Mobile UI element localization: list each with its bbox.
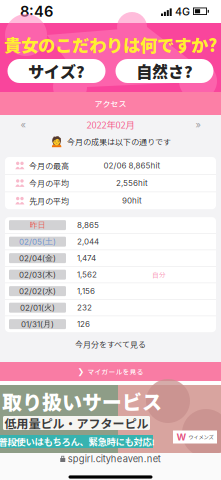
button[interactable]: 取り扱いサービス (0, 385, 221, 453)
staticText: » (195, 119, 200, 130)
staticText: 2,556hit (116, 178, 148, 188)
staticText: 今月の平均 (29, 177, 69, 189)
staticText: 8,865 (77, 220, 99, 230)
staticText: 02/03(木) (19, 270, 56, 280)
staticText: 2022年02月 (86, 118, 134, 131)
staticText: « (20, 119, 25, 130)
staticText: 普段使いはもちろん、緊急時にも対応! (0, 435, 154, 448)
staticText: 2,044 (77, 237, 99, 246)
staticText: 今月の最高 (29, 160, 69, 171)
staticText: 02/01(火) (20, 303, 55, 313)
staticText: 232 (77, 303, 92, 312)
staticText: 02/06 8,865hit (103, 161, 160, 170)
button[interactable]: 今月分をすべて見る (0, 332, 221, 356)
staticText: 🙍 (50, 135, 63, 148)
staticText: 4G (175, 5, 190, 18)
button[interactable]: 前の月 (0, 115, 46, 134)
staticText: アクセス (94, 98, 126, 109)
button[interactable]: ❯ (0, 362, 221, 381)
staticText: 02/05(土) (19, 237, 56, 247)
staticText: ウィメンズ (188, 433, 213, 441)
staticText: spgirl.cityheaven.net (68, 453, 161, 465)
button[interactable]: 次の月 (175, 115, 221, 134)
staticText: サイズ? (28, 59, 85, 83)
staticText: 1,474 (77, 253, 96, 263)
staticText: 先月の平均 (29, 195, 69, 206)
staticText: 1,156 (77, 286, 95, 296)
staticText: 01/31(月) (21, 319, 54, 329)
staticText: 126 (77, 319, 90, 329)
staticText: 貴女のこだわりは何ですか? (4, 32, 217, 57)
staticText: ❯ (77, 367, 84, 376)
staticText: 自分 (152, 270, 166, 279)
staticText: 02/02(水) (19, 286, 56, 296)
staticText: 取り扱いサービス (2, 386, 162, 415)
staticText: 低用量ピル・アフターピル (4, 414, 148, 432)
staticText: 今月分をすべて見る (75, 338, 146, 350)
staticText: 8:46 (20, 3, 53, 20)
staticText: 昨日 (29, 220, 45, 230)
staticText: マイガールを見る (87, 367, 143, 376)
staticText: 1,562 (77, 270, 97, 279)
staticText: 自然さ? (136, 59, 193, 83)
button[interactable]: 貴女のこだわりは何ですか? (0, 23, 221, 92)
staticText: 90hit (122, 196, 142, 206)
staticText: W (176, 431, 186, 443)
staticText: 02/04(金) (19, 253, 56, 263)
staticText: 今月の成果は以下の通りです (67, 136, 171, 147)
